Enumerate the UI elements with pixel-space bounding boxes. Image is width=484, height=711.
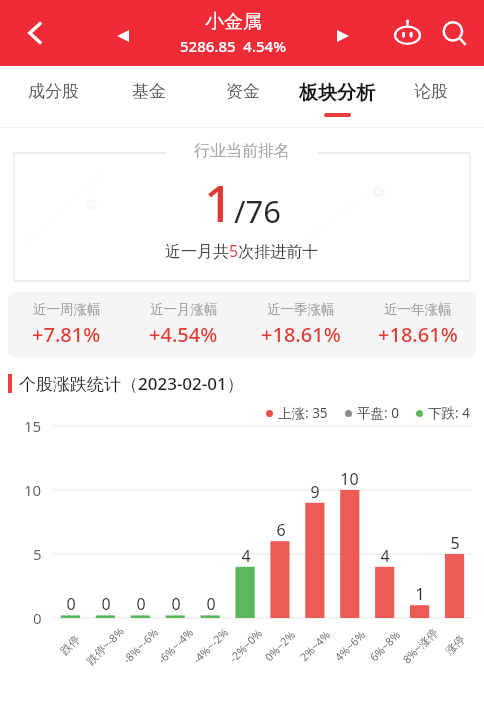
staticText: 近一季涨幅: [267, 301, 335, 318]
button[interactable]: 近一季涨幅: [242, 301, 359, 348]
staticText: -6%~-4%: [154, 624, 197, 667]
staticText: 下跌: 4: [428, 404, 470, 422]
button[interactable]: Next sector: [326, 19, 360, 53]
staticText: 0: [171, 593, 181, 615]
staticText: 0%~2%: [261, 627, 299, 664]
staticText: 小金属: [205, 10, 262, 34]
staticText: 5: [33, 544, 42, 564]
staticText: 个股涨跌统计（2023-02-01）: [19, 372, 244, 395]
staticText: 成分股: [28, 81, 79, 102]
staticText: 4%~6%: [331, 627, 369, 664]
staticText: 5286.85 4.54%: [180, 36, 286, 56]
button[interactable]: 论股: [384, 66, 478, 128]
staticText: 2%~4%: [296, 627, 334, 664]
staticText: +4.54%: [149, 321, 218, 348]
button[interactable]: Search: [432, 11, 476, 55]
staticText: +18.61%: [261, 321, 341, 348]
staticText: 6%~8%: [366, 627, 404, 664]
staticText: 近一年涨幅: [384, 301, 452, 318]
button[interactable]: 资金: [196, 66, 290, 128]
button[interactable]: 成分股: [6, 66, 101, 128]
button[interactable]: 近一年涨幅: [359, 301, 476, 348]
staticText: 1: [204, 167, 234, 236]
staticText: 近一周涨幅: [33, 301, 101, 318]
staticText: -4%~-2%: [189, 624, 232, 667]
button[interactable]: 板块分析: [290, 66, 384, 128]
staticText: 8%~涨停: [399, 625, 441, 666]
staticText: 论股: [414, 81, 448, 102]
button[interactable]: 近一周涨幅: [8, 301, 125, 348]
button[interactable]: 基金: [101, 66, 196, 128]
staticText: 0: [33, 608, 42, 628]
staticText: 4: [380, 545, 390, 567]
staticText: 上涨: 35: [278, 404, 328, 422]
staticText: 0: [136, 593, 146, 615]
staticText: +7.81%: [32, 321, 101, 348]
staticText: 15: [24, 416, 42, 436]
staticText: 跌停: [57, 632, 83, 658]
staticText: -8%~-6%: [119, 624, 162, 667]
button[interactable]: AI assistant: [386, 12, 428, 54]
staticText: 资金: [226, 81, 260, 102]
button[interactable]: 近一月涨幅: [125, 301, 242, 348]
staticText: 10: [24, 480, 42, 500]
staticText: /76: [234, 190, 281, 232]
button[interactable]: Back: [14, 11, 58, 55]
staticText: 0: [101, 593, 111, 615]
button[interactable]: Previous sector: [106, 19, 140, 53]
staticText: 涨停: [442, 632, 468, 658]
staticText: 5: [450, 532, 460, 554]
staticText: 1: [415, 583, 425, 605]
staticText: 10: [340, 468, 359, 490]
staticText: 平盘: 0: [357, 404, 399, 422]
staticText: +18.61%: [378, 321, 458, 348]
staticText: 近一月涨幅: [150, 301, 218, 318]
staticText: 基金: [132, 81, 166, 102]
staticText: 板块分析: [299, 81, 375, 105]
staticText: 0: [206, 593, 216, 615]
staticText: 4: [241, 545, 251, 567]
staticText: 行业当前排名: [194, 141, 290, 161]
staticText: 近一月共5次排进前十: [165, 240, 319, 262]
staticText: 9: [310, 481, 320, 503]
staticText: 6: [276, 519, 286, 541]
staticText: 跌停~-8%: [83, 623, 127, 668]
staticText: -2%~0%: [226, 626, 265, 665]
staticText: 0: [66, 593, 76, 615]
